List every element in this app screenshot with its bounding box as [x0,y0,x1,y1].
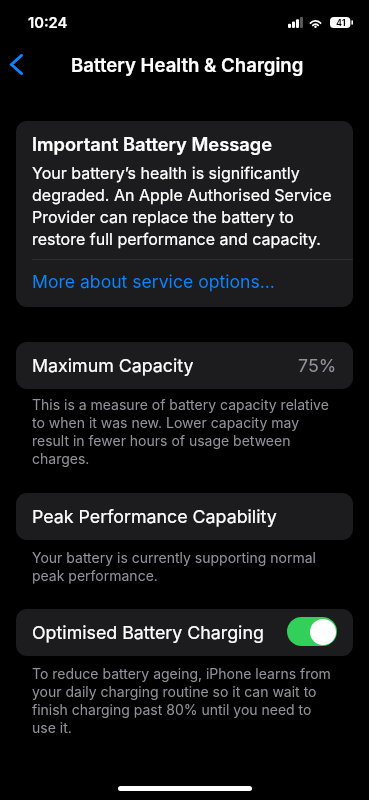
button[interactable]: Peak Performance Capability [16,493,353,540]
button[interactable]: Maximum Capacity [16,342,353,389]
staticText: Maximum Capacity [32,355,194,377]
button[interactable]: Optimised Battery Charging [287,617,337,646]
button[interactable]: Optimised Battery Charging [16,609,353,656]
staticText: Optimised Battery Charging [32,622,264,644]
staticText: 10:24 [28,14,68,32]
staticText: Important Battery Message [32,133,273,155]
staticText: More about service options... [32,272,275,292]
staticText: This is a measure of battery capacity re… [32,395,337,467]
staticText: 41 [336,17,346,28]
staticText: Peak Performance Capability [32,506,277,528]
staticText: 75% [298,355,337,377]
staticText: Your battery is currently supporting nor… [32,548,337,584]
button[interactable]: Back [0,46,40,86]
staticText: Battery Health & Charging [71,54,304,77]
staticText: Your battery’s health is significantly d… [32,161,337,249]
staticText: To reduce battery ageing, iPhone learns … [32,664,337,736]
button[interactable]: More about service options... [16,260,353,307]
